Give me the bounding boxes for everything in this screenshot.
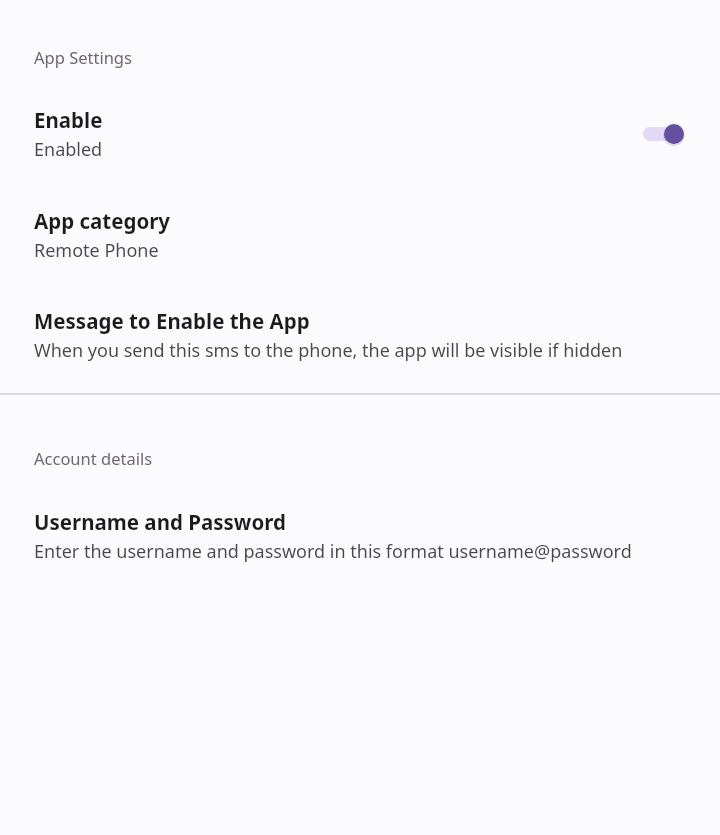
staticText: Message to Enable the App [34, 307, 310, 335]
staticText: Enter the username and password in this … [34, 539, 632, 564]
button[interactable]: Message to Enable the App [0, 307, 720, 363]
staticText: Username and Password [34, 508, 286, 536]
staticText: Enabled [34, 137, 103, 162]
staticText: Enable [34, 106, 103, 134]
button[interactable]: Username and Password [0, 508, 720, 564]
button[interactable]: Enable toggle [643, 114, 701, 154]
staticText: Account details [34, 447, 701, 469]
staticText: App category [34, 207, 171, 235]
staticText: When you send this sms to the phone, the… [34, 338, 623, 363]
button[interactable]: App category [0, 207, 720, 263]
staticText: Remote Phone [34, 238, 159, 263]
staticText: App Settings [34, 46, 701, 68]
button[interactable]: Enable [0, 106, 720, 162]
